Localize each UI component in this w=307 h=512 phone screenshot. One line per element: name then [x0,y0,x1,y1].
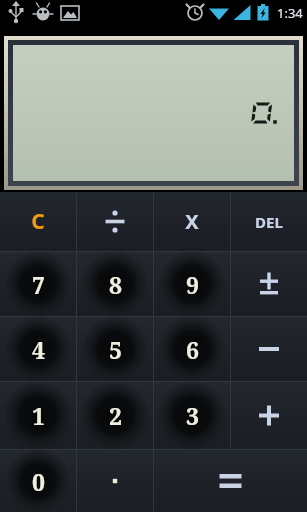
staticText: 8 [109,269,122,300]
staticText: 9 [186,269,199,300]
staticText: 0 [32,466,45,497]
button[interactable]: Plus minus [231,252,307,316]
staticText: 4 [32,334,45,365]
button[interactable]: 9 [154,252,230,316]
button[interactable]: Divide [77,192,153,251]
button[interactable]: DEL [231,192,307,251]
staticText: 1 [32,400,45,431]
button[interactable]: 8 [77,252,153,316]
staticText: X [185,208,199,235]
staticText: 1:34 [277,4,303,22]
button[interactable]: Decimal point [77,450,153,512]
button[interactable]: C [0,192,76,251]
button[interactable]: 5 [77,317,153,381]
button[interactable]: X [154,192,230,251]
button[interactable]: 1 [0,382,76,449]
staticText: 3 [186,400,199,431]
staticText: 5 [109,334,122,365]
staticText: C [31,207,45,236]
button[interactable]: 0 [0,450,76,512]
button[interactable]: 7 [0,252,76,316]
staticText: DEL [255,212,283,232]
button[interactable]: 6 [154,317,230,381]
button[interactable]: Equals [154,450,307,512]
button[interactable]: 2 [77,382,153,449]
staticText: 6 [186,334,199,365]
button[interactable]: Plus [231,382,307,449]
staticText: 7 [32,269,45,300]
button[interactable]: 4 [0,317,76,381]
button[interactable]: 3 [154,382,230,449]
button[interactable]: Minus [231,317,307,381]
staticText: 2 [109,400,122,431]
